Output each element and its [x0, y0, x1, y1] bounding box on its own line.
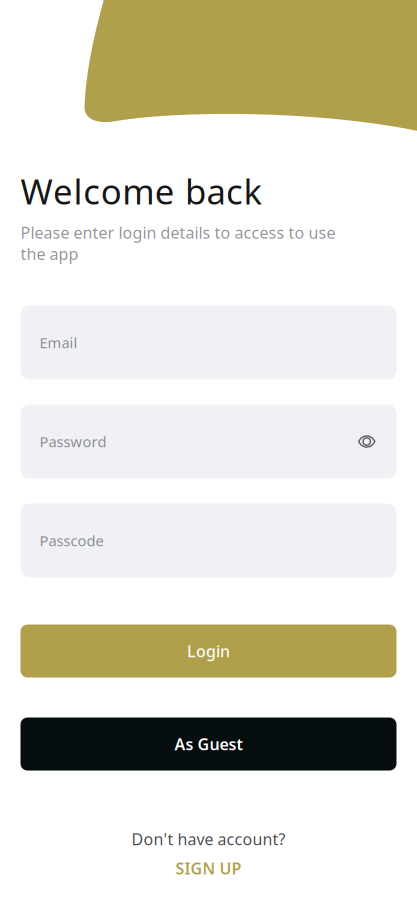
staticText: Passcode [39, 531, 103, 550]
staticText: Password [39, 432, 106, 451]
button[interactable]: Login [20, 624, 396, 677]
staticText: As Guest [174, 733, 242, 755]
staticText: Email [39, 333, 77, 352]
button[interactable]: Show password [358, 434, 375, 449]
button[interactable]: As Guest [20, 717, 396, 770]
staticText: Please enter login details to access to … [20, 222, 335, 264]
staticText: SIGN UP [175, 858, 241, 879]
button[interactable]: Email [20, 305, 396, 379]
button[interactable]: SIGN UP [175, 858, 241, 879]
button[interactable]: Passcode [20, 503, 396, 577]
staticText: Welcome back [20, 168, 262, 214]
button[interactable]: Password [20, 404, 396, 478]
staticText: Login [187, 640, 230, 662]
staticText: Don't have account? [131, 828, 285, 850]
